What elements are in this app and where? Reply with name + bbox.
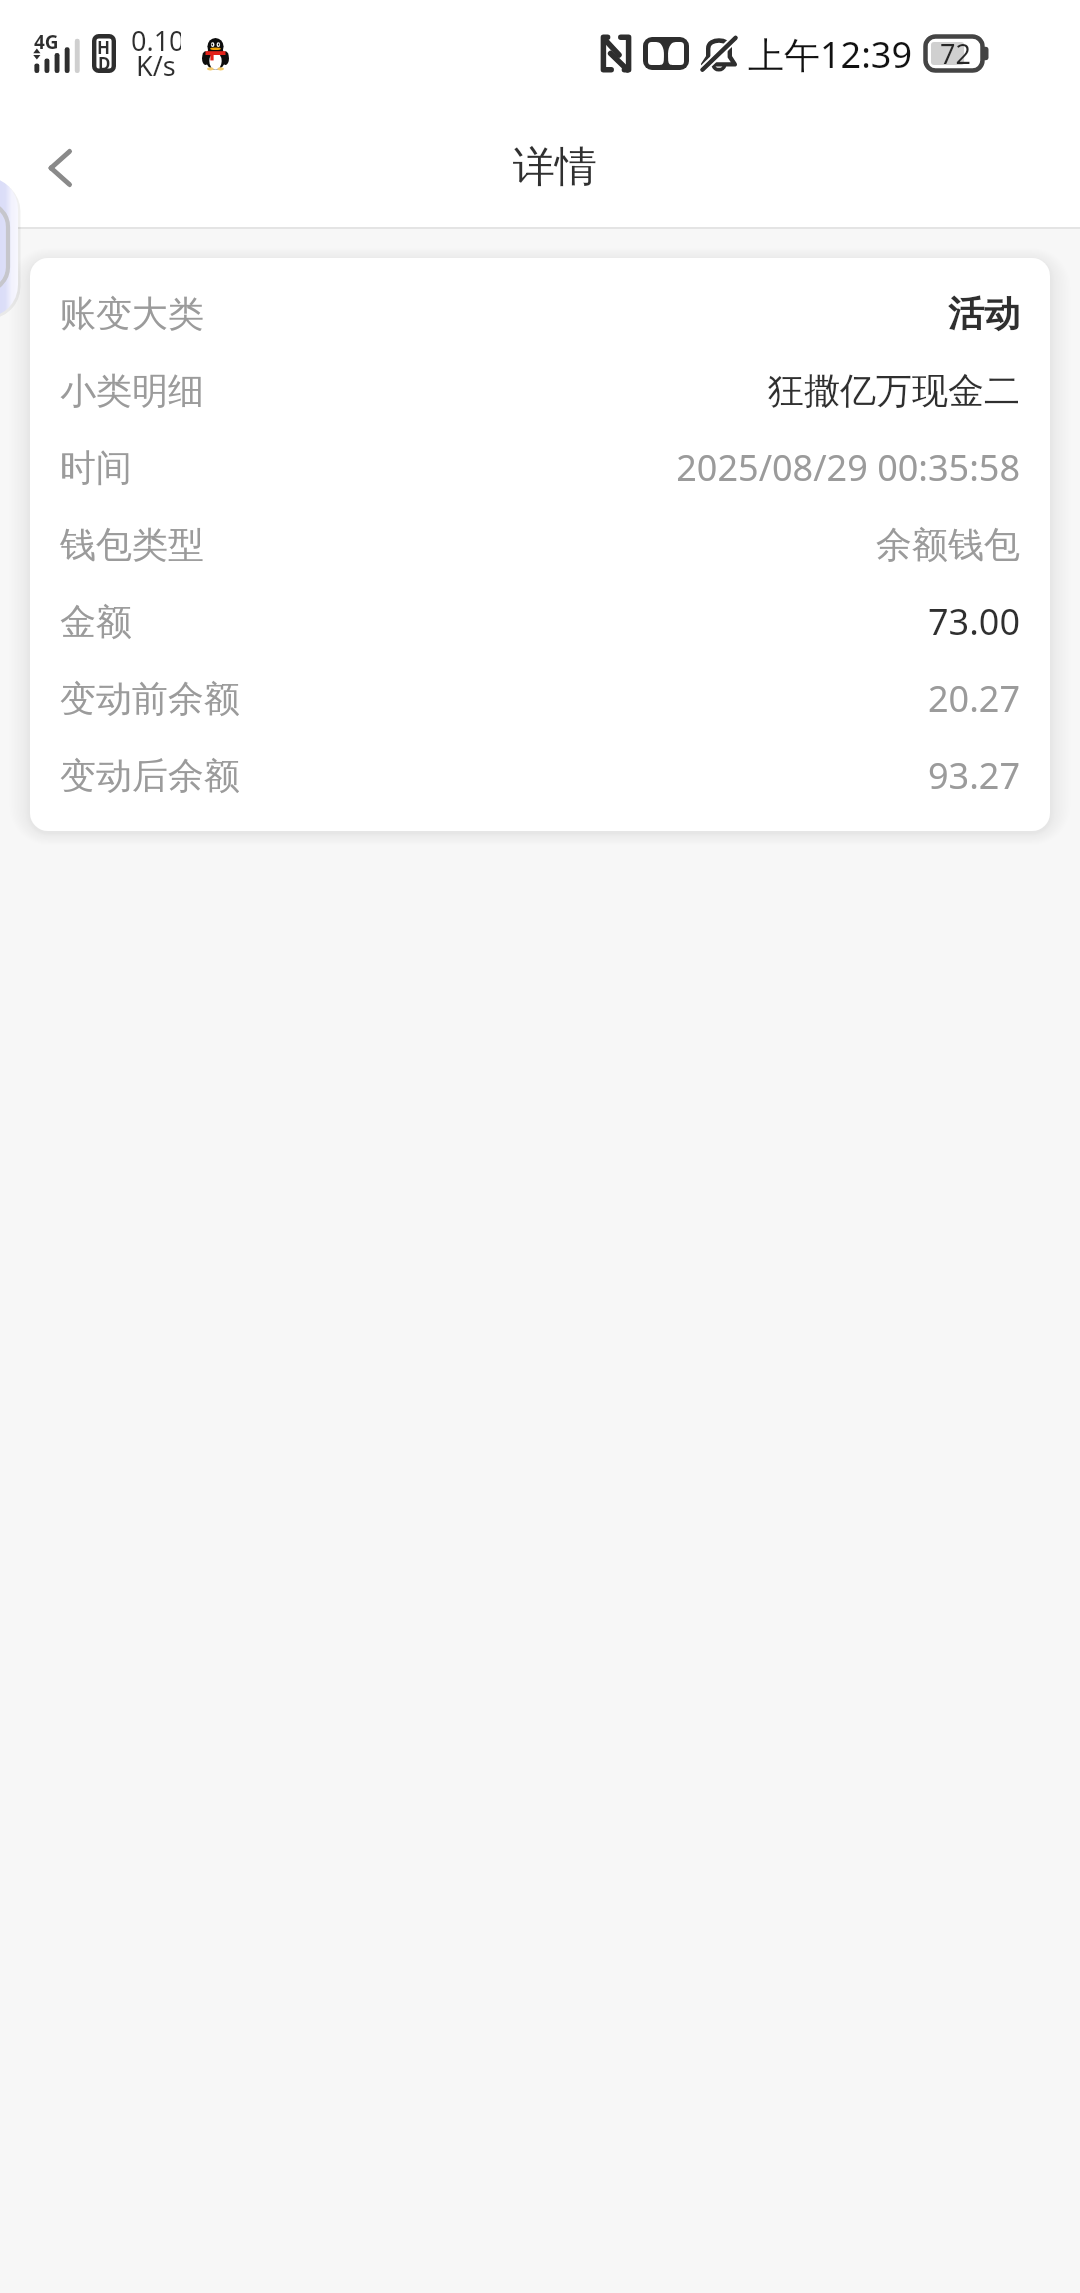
staticText: 时间	[60, 445, 132, 490]
button[interactable]: Back	[0, 118, 100, 218]
staticText: 4G	[34, 29, 59, 55]
staticText: H	[97, 36, 111, 59]
staticText: D	[98, 52, 111, 75]
staticText: 2025/08/29 00:35:58	[676, 443, 1020, 492]
staticText: 账变大类	[60, 291, 204, 336]
staticText: 钱包类型	[60, 522, 204, 567]
staticText: 变动前余额	[60, 676, 240, 721]
staticText: 小类明细	[60, 368, 204, 413]
staticText: 72	[940, 35, 971, 72]
button[interactable]: 变动前余额	[60, 660, 1020, 737]
button[interactable]: 账变大类	[60, 275, 1020, 352]
staticText: 73.00	[927, 597, 1020, 646]
staticText: 变动后余额	[60, 753, 240, 798]
button[interactable]: 小类明细	[60, 352, 1020, 429]
staticText: 详情	[513, 141, 597, 194]
button[interactable]: 钱包类型	[60, 506, 1020, 583]
button[interactable]: 金额	[60, 583, 1020, 660]
staticText: 狂撒亿万现金二	[768, 368, 1020, 413]
staticText: 活动	[948, 291, 1020, 336]
staticText: K/s	[136, 47, 176, 84]
staticText: 20.27	[927, 674, 1020, 723]
staticText: 93.27	[927, 751, 1020, 800]
staticText: 0.10	[131, 22, 181, 59]
button[interactable]: 变动后余额	[60, 737, 1020, 814]
staticText: 金额	[60, 599, 132, 644]
button[interactable]: 时间	[60, 429, 1020, 506]
staticText: 余额钱包	[876, 522, 1020, 567]
button[interactable]: Floating assistant	[0, 177, 18, 317]
staticText: 上午12:39	[748, 30, 913, 79]
